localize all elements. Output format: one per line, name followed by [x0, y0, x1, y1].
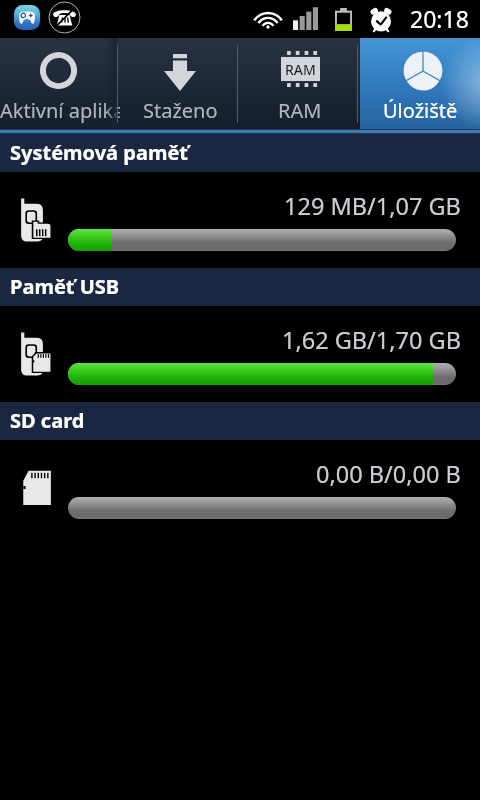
staticText: RAM — [278, 97, 322, 124]
staticText: 1,62 GB/1,70 GB — [282, 324, 461, 356]
staticText: Úložiště — [383, 97, 458, 124]
button[interactable]: 1,62 GB/1,70 GB — [0, 306, 480, 402]
staticText: SD card — [10, 407, 85, 434]
staticText: Systémová paměť — [10, 139, 189, 166]
button[interactable]: 129 MB/1,07 GB — [0, 172, 480, 268]
staticText: 20:18 — [410, 3, 469, 34]
staticText: Staženo — [143, 97, 218, 124]
button[interactable]: Úložiště — [360, 38, 480, 129]
staticText: Aktivní aplikace — [0, 97, 120, 124]
staticText: 129 MB/1,07 GB — [284, 190, 461, 222]
staticText: Paměť USB — [10, 273, 120, 300]
button[interactable]: 0,00 B/0,00 B — [0, 440, 480, 536]
button[interactable]: Aktivní aplikace — [0, 38, 120, 129]
staticText: 0,00 B/0,00 B — [316, 458, 461, 490]
staticText: RAM — [285, 60, 316, 79]
button[interactable]: Staženo — [120, 38, 240, 129]
button[interactable]: RAM — [240, 38, 360, 129]
